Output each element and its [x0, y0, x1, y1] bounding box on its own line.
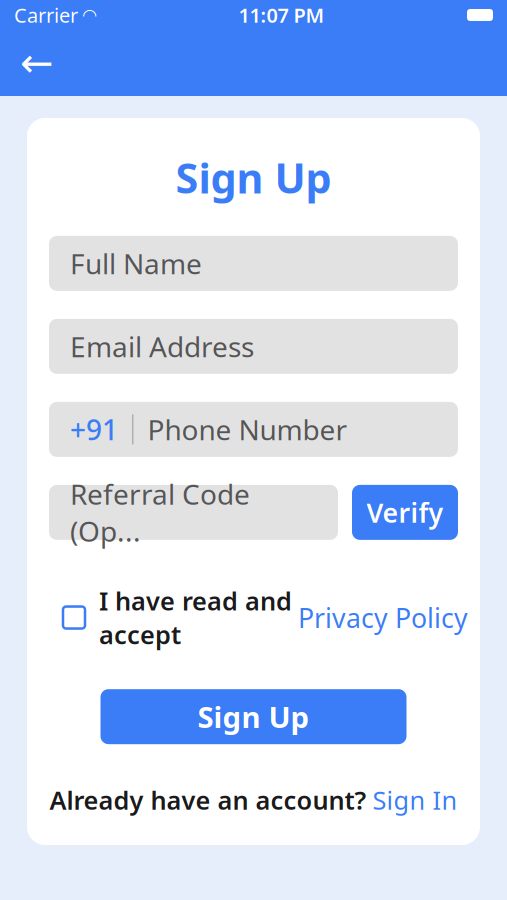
staticText: ← [20, 40, 54, 86]
staticText: Carrier [14, 2, 78, 28]
staticText: Privacy Policy [298, 600, 468, 635]
staticText: Phone Number [147, 411, 347, 448]
button[interactable]: Privacy Policy [292, 600, 468, 635]
staticText: Email Address [70, 328, 254, 365]
staticText: 11:07 PM [238, 2, 324, 28]
staticText: Sign In [372, 783, 457, 817]
staticText: Already have an account? [49, 783, 366, 817]
staticText: Sign Up [197, 697, 309, 736]
staticText: I have read and accept [99, 584, 292, 651]
staticText: ◠ [83, 5, 96, 25]
staticText: +91 [70, 411, 118, 448]
button[interactable]: Back [10, 36, 64, 90]
staticText: Referral Code (Op... [70, 475, 250, 550]
staticText: Verify [366, 495, 443, 530]
button[interactable]: Accept privacy policy [55, 598, 93, 636]
button[interactable]: Sign In [366, 783, 457, 817]
staticText: Sign Up [175, 150, 331, 205]
staticText: Full Name [70, 245, 202, 282]
button[interactable]: Sign Up [100, 689, 406, 744]
button[interactable]: Verify [352, 485, 458, 540]
